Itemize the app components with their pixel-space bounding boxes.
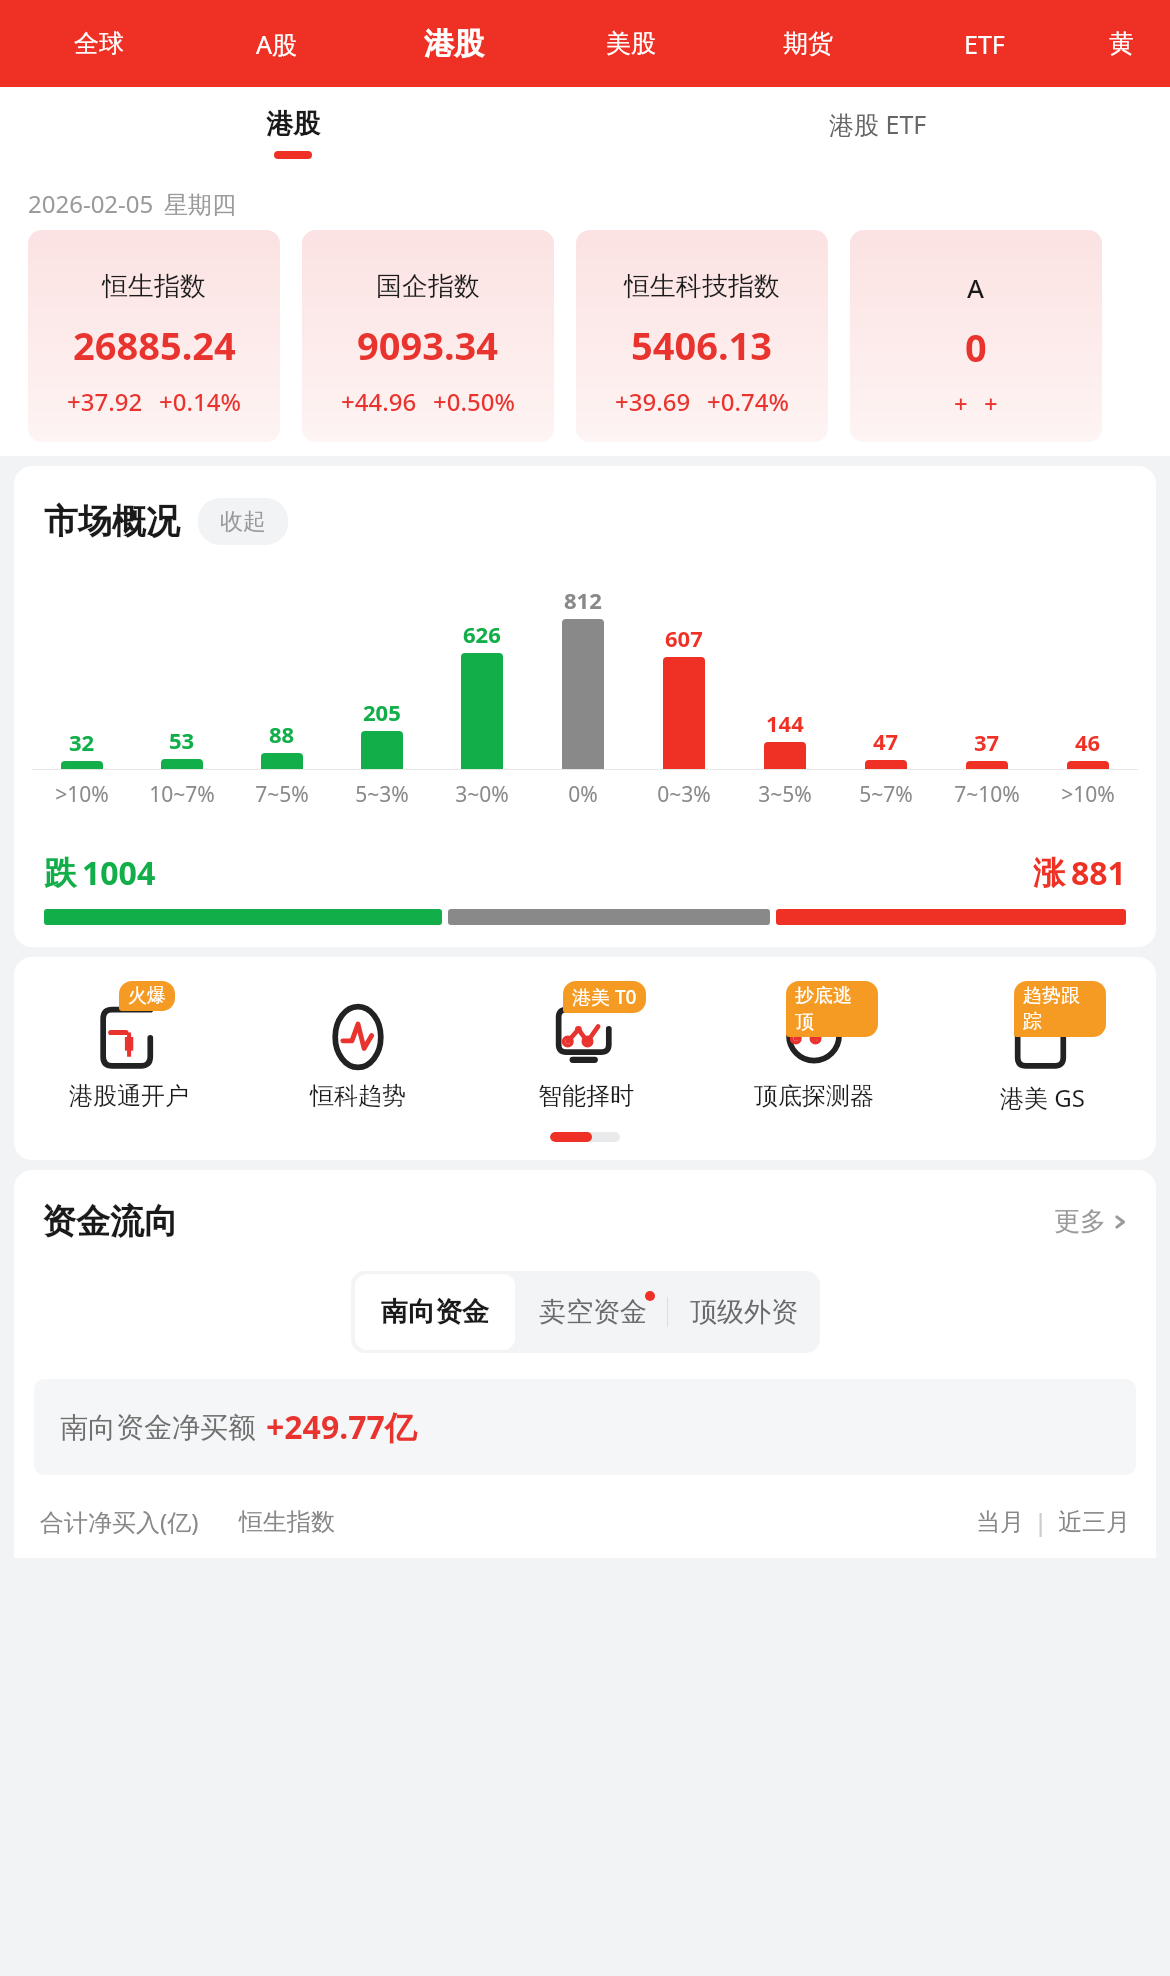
staticText: 9093.34 bbox=[357, 319, 499, 371]
staticText: 星期四 bbox=[164, 190, 236, 220]
staticText: 恒生指数 bbox=[239, 1507, 335, 1537]
staticText: +37.92 bbox=[67, 385, 143, 418]
button[interactable]: 恒生科技指数 bbox=[576, 230, 828, 442]
button[interactable]: 国企指数 bbox=[302, 230, 554, 442]
staticText: + bbox=[954, 387, 968, 420]
staticText: 恒生科技指数 bbox=[624, 270, 780, 303]
staticText: 合计净买入(亿) bbox=[40, 1505, 199, 1538]
staticText: 南向资金 bbox=[381, 1295, 489, 1329]
staticText: 涨 bbox=[1033, 853, 1065, 893]
staticText: 2026-02-05 bbox=[28, 187, 154, 220]
staticText: 港股通开户 bbox=[69, 1081, 189, 1111]
staticText: 881 bbox=[1071, 851, 1126, 895]
staticText: 美股 bbox=[606, 28, 656, 59]
button[interactable]: 智能择时 bbox=[472, 983, 700, 1111]
staticText: 港美 T0 bbox=[572, 984, 637, 1010]
staticText: >10% bbox=[55, 780, 109, 809]
button[interactable]: 顶级外资 bbox=[668, 1271, 820, 1353]
staticText: 5406.13 bbox=[631, 319, 773, 371]
button[interactable]: 更多 bbox=[1054, 1205, 1128, 1238]
staticText: 0~3% bbox=[657, 780, 711, 809]
staticText: 7~10% bbox=[954, 780, 1020, 809]
staticText: 南向资金净买额 bbox=[60, 1410, 256, 1445]
staticText: 3~5% bbox=[758, 780, 812, 809]
staticText: 顶底探测器 bbox=[754, 1081, 874, 1111]
staticText: 当月 bbox=[976, 1507, 1024, 1537]
button[interactable]: ETF bbox=[896, 0, 1073, 87]
button[interactable]: 收起 bbox=[198, 498, 288, 545]
staticText: 26885.24 bbox=[73, 319, 236, 371]
staticText: 37 bbox=[974, 727, 1000, 757]
staticText: 港股 bbox=[266, 107, 320, 141]
staticText: +0.14% bbox=[159, 385, 241, 418]
staticText: 近三月 bbox=[1058, 1507, 1130, 1537]
staticText: 53 bbox=[169, 725, 195, 755]
staticText: 更多 bbox=[1054, 1205, 1106, 1238]
button[interactable]: 南向资金 bbox=[355, 1274, 515, 1350]
button[interactable]: 黄 bbox=[1073, 0, 1170, 87]
staticText: 88 bbox=[269, 719, 295, 749]
staticText: 3~0% bbox=[455, 780, 509, 809]
button[interactable]: A股 bbox=[188, 0, 365, 87]
staticText: 趋势跟踪 bbox=[1023, 984, 1097, 1034]
staticText: 恒生指数 bbox=[102, 270, 206, 303]
staticText: 恒科趋势 bbox=[310, 1081, 406, 1111]
staticText: 市场概况 bbox=[44, 500, 180, 543]
staticText: 32 bbox=[69, 727, 95, 757]
staticText: 卖空资金 bbox=[539, 1295, 647, 1329]
button[interactable]: 卖空资金 bbox=[519, 1271, 667, 1353]
staticText: +39.69 bbox=[615, 385, 691, 418]
staticText: 资金流向 bbox=[42, 1200, 178, 1243]
staticText: 跌 bbox=[44, 853, 76, 893]
button[interactable]: 港股通开户 bbox=[14, 983, 243, 1111]
staticText: 国企指数 bbox=[376, 270, 480, 303]
staticText: A bbox=[967, 270, 985, 305]
staticText: 0 bbox=[965, 321, 987, 373]
staticText: 812 bbox=[564, 585, 602, 615]
staticText: >10% bbox=[1061, 780, 1115, 809]
staticText: 10~7% bbox=[149, 780, 215, 809]
staticText: 1004 bbox=[82, 851, 156, 895]
staticText: 港股 ETF bbox=[829, 107, 927, 141]
staticText: 144 bbox=[766, 708, 804, 738]
staticText: +44.96 bbox=[341, 385, 417, 418]
staticText: | bbox=[1034, 1505, 1048, 1538]
staticText: 期货 bbox=[783, 28, 833, 59]
button[interactable]: 期货 bbox=[719, 0, 896, 87]
staticText: 205 bbox=[363, 697, 401, 727]
button[interactable]: 港股 bbox=[365, 0, 542, 87]
staticText: 0% bbox=[568, 780, 598, 809]
button[interactable]: 港股 bbox=[0, 87, 585, 179]
staticText: +0.74% bbox=[707, 385, 789, 418]
staticText: 火爆 bbox=[128, 984, 166, 1008]
button[interactable]: 港股 ETF bbox=[585, 87, 1170, 179]
staticText: 5~7% bbox=[859, 780, 913, 809]
staticText: 47 bbox=[873, 726, 899, 756]
button[interactable]: 恒生指数 bbox=[28, 230, 280, 442]
staticText: 46 bbox=[1075, 727, 1101, 757]
staticText: 全球 bbox=[74, 28, 124, 59]
button[interactable]: 全球 bbox=[10, 0, 188, 87]
button[interactable]: 恒科趋势 bbox=[243, 983, 472, 1111]
staticText: 626 bbox=[463, 619, 501, 649]
staticText: 收起 bbox=[220, 507, 266, 536]
button[interactable]: A bbox=[850, 230, 1102, 442]
staticText: ETF bbox=[964, 27, 1005, 61]
staticText: 黄 bbox=[1109, 28, 1134, 59]
staticText: 智能择时 bbox=[538, 1081, 634, 1111]
staticText: 607 bbox=[665, 623, 703, 653]
staticText: +249.77亿 bbox=[266, 1405, 417, 1449]
button[interactable]: 美股 bbox=[542, 0, 719, 87]
staticText: 港美 GS bbox=[1000, 1081, 1085, 1114]
staticText: 抄底逃顶 bbox=[795, 984, 869, 1034]
staticText: + bbox=[984, 387, 998, 420]
button[interactable]: 顶底探测器 bbox=[700, 983, 928, 1111]
staticText: 7~5% bbox=[255, 780, 309, 809]
staticText: 顶级外资 bbox=[690, 1295, 798, 1329]
button[interactable]: 港美 GS bbox=[928, 983, 1156, 1114]
staticText: 港股 bbox=[424, 25, 484, 63]
staticText: 5~3% bbox=[355, 780, 409, 809]
staticText: A股 bbox=[256, 27, 297, 61]
staticText: +0.50% bbox=[433, 385, 515, 418]
